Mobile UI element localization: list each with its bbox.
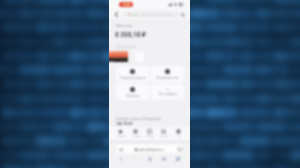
staticText: Все сервисы — [159, 92, 177, 96]
button[interactable]: Search — [179, 10, 187, 19]
button[interactable]: Оплатить — [116, 84, 149, 100]
staticText: Платежи — [145, 135, 155, 138]
button[interactable]: Все сервисы — [151, 84, 184, 100]
button[interactable]: Сервисы — [157, 129, 170, 138]
button[interactable]: аА — [116, 145, 183, 153]
button[interactable]: История — [129, 129, 142, 138]
button[interactable]: Главный — [114, 129, 127, 138]
staticText: 146 753 ₽ — [116, 121, 133, 126]
staticText: А — [128, 12, 131, 17]
button[interactable]: Пополнить счёт — [151, 66, 184, 82]
button[interactable]: Back — [116, 155, 126, 163]
button[interactable]: А — [122, 11, 179, 17]
staticText: 0:14 — [123, 2, 130, 7]
staticText: Мои счета — [116, 24, 133, 28]
button[interactable]: Чат — [172, 129, 185, 138]
staticText: web.alfabank.ru — [138, 147, 164, 152]
button[interactable] — [113, 51, 128, 62]
staticText: Перевести деньги — [120, 76, 146, 80]
button[interactable]: Tabs — [173, 155, 183, 163]
button[interactable]: Перевести деньги — [116, 66, 149, 82]
button[interactable]: Reload — [177, 146, 183, 152]
staticText: Расходы за июль: 23 операции — [116, 117, 161, 121]
button[interactable]: Платежи — [143, 129, 156, 138]
button[interactable]: Share — [145, 155, 155, 163]
staticText: аА — [119, 147, 124, 152]
button[interactable]: Bookmarks — [159, 155, 169, 163]
staticText: Пополнить счёт — [156, 76, 179, 80]
staticText: Оплатить — [126, 94, 140, 98]
staticText: 8 350,18 ₽ — [115, 30, 146, 39]
staticText: льфа — [131, 13, 139, 17]
staticText: Счета и карты — [116, 45, 136, 49]
button[interactable]: Back — [113, 10, 120, 19]
